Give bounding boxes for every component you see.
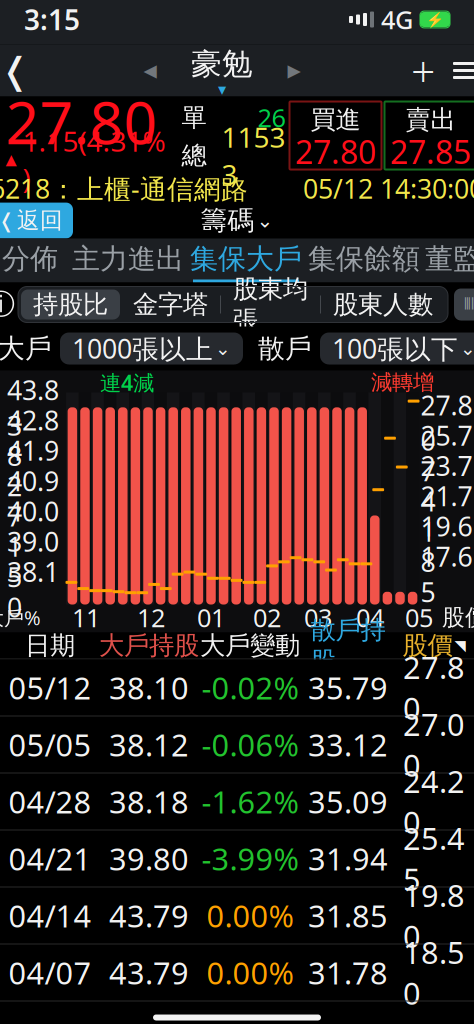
staticText: -0.06% [201, 724, 298, 765]
button[interactable]: Back [0, 44, 42, 96]
button[interactable]: 買進 [289, 101, 381, 169]
staticText: 43.79 [109, 895, 189, 936]
staticText: 35.79 [308, 667, 388, 708]
staticText: 03 [304, 601, 332, 634]
staticText: 豪勉 [191, 45, 253, 83]
staticText: 金字塔 [133, 289, 208, 320]
staticText: 12 [137, 601, 165, 634]
button[interactable]: 股東人數 [321, 289, 445, 319]
staticText: 18.50 [403, 932, 465, 1013]
staticText: ⚡ [426, 11, 444, 28]
staticText: 集保大戶 [190, 242, 302, 276]
staticText: 31.85 [308, 895, 388, 936]
staticText: 1000張以上 [72, 331, 213, 366]
staticText: 股價 [442, 604, 474, 631]
button[interactable]: 董監 [423, 238, 474, 282]
staticText: 日期 [25, 630, 75, 661]
staticText: 主力進出 [72, 242, 184, 276]
staticText: 05/05 [8, 724, 91, 765]
staticText: 40.01 [7, 493, 59, 564]
button[interactable]: 持股比 [21, 289, 120, 319]
button[interactable]: 豪勉 [167, 44, 277, 96]
staticText: ◥ [454, 637, 465, 654]
staticText: 43.83 [7, 372, 59, 443]
button[interactable]: 籌碼 [192, 202, 281, 239]
button[interactable]: 05/05 [0, 716, 474, 773]
staticText: 籌碼 [200, 204, 254, 237]
staticText: 股東均張 [233, 273, 308, 336]
staticText: ⌄ [215, 338, 231, 359]
staticText: 31.94 [308, 838, 388, 879]
staticText: -1.62% [201, 781, 298, 822]
staticText: 40.97 [7, 463, 59, 534]
button[interactable]: 04/14 [0, 887, 474, 944]
staticText: 散戶持股 [310, 614, 385, 677]
button[interactable]: Add [402, 44, 444, 96]
button[interactable]: 金字塔 [121, 289, 220, 319]
button[interactable]: 04/07 [0, 944, 474, 1001]
staticText: 38.18 [109, 781, 189, 822]
staticText: 大戶變動 [200, 630, 300, 661]
staticText: 04/07 [8, 952, 91, 993]
staticText: 01 [197, 601, 225, 634]
staticText: ⌄ [460, 338, 474, 359]
staticText: ▼ [218, 84, 226, 96]
button[interactable]: 05/12 [0, 659, 474, 716]
staticText: 21.71 [420, 478, 472, 549]
staticText: 買進 [310, 104, 360, 135]
button[interactable]: 100張以下 [320, 332, 474, 364]
staticText: 24.20 [403, 761, 465, 842]
staticText: 6218：上櫃-通信網路 [0, 171, 248, 206]
staticText: 26 [257, 101, 285, 134]
staticText: + [411, 42, 435, 99]
button[interactable]: 股東均張 [221, 289, 320, 319]
staticText: 39.80 [109, 838, 189, 879]
staticText: 04/21 [8, 838, 91, 879]
staticText: 38.10 [109, 667, 189, 708]
staticText: ⌄ [256, 209, 273, 232]
staticText: 35.09 [308, 781, 388, 822]
button[interactable]: Previous stock [133, 44, 167, 96]
button[interactable]: Chart options [454, 288, 474, 320]
staticText: -3.99% [201, 838, 298, 879]
staticText: 05/12 [8, 667, 91, 708]
button[interactable]: 1000張以上 [60, 332, 243, 364]
staticText: 27.80 [403, 647, 465, 728]
staticText: 董監 [425, 242, 474, 276]
staticText: 43.79 [109, 952, 189, 993]
button[interactable]: 主力進出 [69, 238, 187, 282]
staticText: 25.45 [403, 818, 465, 899]
staticText: 大戶 [0, 332, 52, 365]
staticText: 17.65 [420, 539, 472, 610]
button[interactable]: 分佈 [0, 238, 69, 282]
button[interactable]: Info [0, 287, 18, 321]
staticText: 27.80 [420, 387, 472, 458]
button[interactable]: 04/21 [0, 830, 474, 887]
staticText: 大戶持股 [99, 630, 199, 661]
staticText: 1.15(4.31%) [22, 122, 165, 197]
staticText: 27.00 [403, 704, 465, 785]
button[interactable]: Next stock [277, 44, 311, 96]
button[interactable]: 集保大戶 [187, 238, 305, 282]
staticText: 分佈 [2, 242, 58, 276]
staticText: 單 [181, 102, 206, 133]
staticText: 42.88 [7, 402, 59, 473]
button[interactable]: 賣出 [384, 101, 474, 169]
staticText: 38.12 [109, 724, 189, 765]
staticText: 04 [356, 601, 384, 634]
staticText: -0.02% [201, 667, 298, 708]
button[interactable]: 04/28 [0, 773, 474, 830]
staticText: ▶ [287, 61, 300, 80]
staticText: 集保餘額 [308, 242, 420, 276]
staticText: 27.80 [295, 130, 376, 173]
staticText: 23.74 [420, 448, 472, 519]
button[interactable]: Menu [444, 44, 474, 96]
button[interactable]: ❬ [0, 203, 73, 238]
staticText: 11 [72, 601, 100, 634]
staticText: 連4減 [100, 368, 154, 397]
staticText: 02 [253, 601, 281, 634]
staticText: 04/28 [8, 781, 91, 822]
staticText: 33.12 [308, 724, 388, 765]
staticText: ▲ [5, 151, 16, 168]
button[interactable]: 集保餘額 [305, 238, 423, 282]
